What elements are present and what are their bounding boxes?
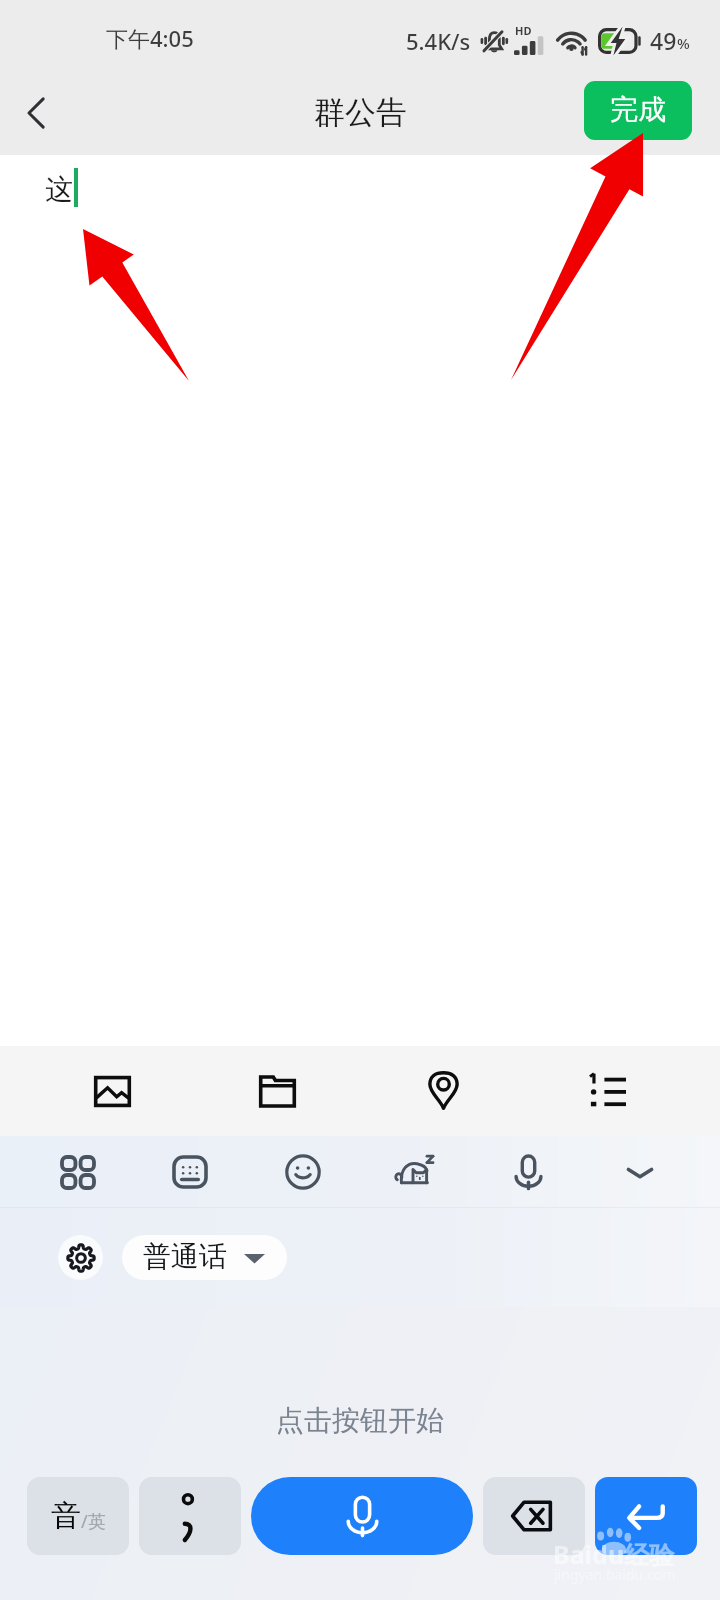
staticText: 点击按钮开始	[276, 1403, 444, 1438]
button[interactable]: 音	[27, 1477, 129, 1555]
button[interactable]: Apps	[43, 1140, 113, 1204]
button[interactable]: Files	[217, 1046, 337, 1136]
staticText: /英	[81, 1509, 106, 1534]
button[interactable]: Settings	[58, 1235, 103, 1280]
button[interactable]: Delete	[483, 1477, 585, 1555]
staticText: HD	[515, 23, 532, 38]
staticText: 下午4:05	[106, 23, 194, 53]
button[interactable]: List	[548, 1046, 668, 1136]
staticText: 普通话	[143, 1239, 227, 1274]
button[interactable]: 普通话	[122, 1235, 287, 1280]
staticText: Baidu经验	[553, 1537, 675, 1571]
staticText: 这	[45, 172, 73, 207]
button[interactable]: Keyboard	[155, 1140, 225, 1204]
button[interactable]: Voice	[493, 1140, 563, 1204]
button[interactable]: Hide	[605, 1140, 675, 1204]
button[interactable]: Back	[8, 89, 64, 145]
button[interactable]: Location	[383, 1046, 503, 1136]
staticText: %	[677, 33, 690, 53]
button[interactable]: Emoji	[268, 1140, 338, 1204]
button[interactable]: 完成	[584, 81, 692, 140]
button[interactable]: Enter	[595, 1477, 697, 1555]
button[interactable]: Image	[52, 1046, 172, 1136]
button[interactable]: Punctuation	[139, 1477, 241, 1555]
staticText: 群公告	[314, 93, 407, 132]
button[interactable]: Speak	[251, 1477, 473, 1555]
staticText: 完成	[610, 92, 666, 127]
staticText: 音	[51, 1497, 81, 1535]
button[interactable]: Sleep	[380, 1140, 450, 1204]
staticText: 5.4K/s	[406, 26, 471, 56]
staticText: 49	[650, 25, 677, 56]
